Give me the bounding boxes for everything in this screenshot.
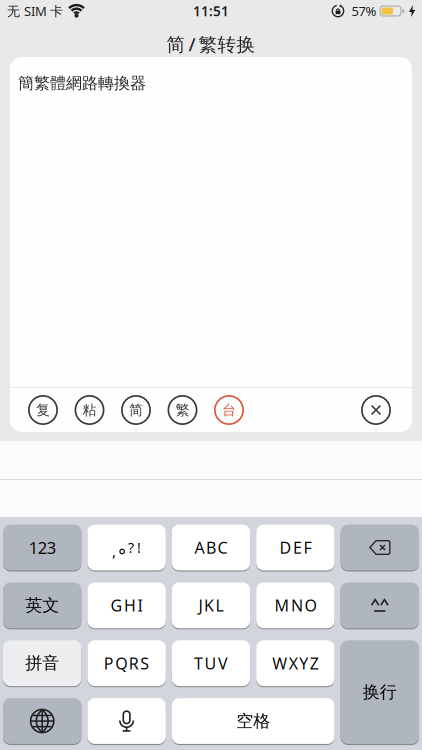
- staticText: 123: [29, 536, 56, 559]
- staticText: 简 / 繁转换: [166, 31, 255, 57]
- staticText: JKL: [198, 594, 223, 616]
- staticText: 简: [129, 401, 143, 419]
- staticText: 空格: [236, 710, 270, 732]
- button[interactable]: [87, 698, 166, 744]
- button[interactable]: [3, 698, 81, 744]
- staticText: WXYZ: [272, 652, 319, 674]
- button[interactable]: 台: [214, 395, 244, 425]
- staticText: 繁: [175, 401, 189, 419]
- button[interactable]: 换行: [341, 640, 419, 744]
- staticText: 拼音: [25, 652, 59, 674]
- staticText: ,: [112, 541, 116, 561]
- button[interactable]: [361, 395, 391, 425]
- staticText: ABC: [194, 537, 227, 558]
- button[interactable]: ,: [87, 525, 166, 570]
- staticText: 复: [36, 401, 50, 419]
- button[interactable]: TUV: [172, 640, 250, 686]
- button[interactable]: [341, 582, 419, 628]
- staticText: PQRS: [104, 652, 149, 674]
- staticText: 57%: [351, 2, 376, 20]
- button[interactable]: PQRS: [87, 640, 166, 686]
- button[interactable]: 粘: [74, 395, 104, 425]
- button[interactable]: DEF: [256, 525, 335, 570]
- button[interactable]: 简: [121, 395, 151, 425]
- button[interactable]: 英文: [3, 582, 81, 628]
- staticText: 11:51: [193, 2, 229, 20]
- button[interactable]: [341, 525, 419, 570]
- staticText: MNO: [274, 594, 316, 616]
- button[interactable]: 复: [28, 395, 58, 425]
- staticText: 换行: [363, 681, 397, 703]
- staticText: GHI: [111, 594, 143, 616]
- staticText: 英文: [25, 595, 59, 616]
- staticText: 粘: [82, 401, 96, 419]
- staticText: TUV: [194, 652, 228, 674]
- button[interactable]: JKL: [172, 582, 250, 628]
- button[interactable]: 空格: [172, 698, 335, 744]
- button[interactable]: GHI: [87, 582, 166, 628]
- button[interactable]: WXYZ: [256, 640, 335, 686]
- button[interactable]: 拼音: [3, 640, 81, 686]
- button[interactable]: 123: [3, 525, 81, 570]
- button[interactable]: 繁: [167, 395, 197, 425]
- button[interactable]: ABC: [172, 525, 250, 570]
- staticText: DEF: [279, 537, 311, 558]
- staticText: 无 SIM 卡: [7, 2, 63, 20]
- button[interactable]: MNO: [256, 582, 335, 628]
- staticText: 簡繁體網路轉換器: [18, 73, 146, 93]
- staticText: ?: [128, 538, 134, 557]
- staticText: 台: [222, 401, 236, 419]
- staticText: !: [137, 538, 141, 557]
